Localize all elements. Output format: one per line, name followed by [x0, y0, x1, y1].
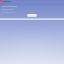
button[interactable]: App icon [0, 0, 2, 3]
button[interactable]: App icon [0, 0, 64, 3]
button[interactable]: Primary action [27, 14, 37, 17]
